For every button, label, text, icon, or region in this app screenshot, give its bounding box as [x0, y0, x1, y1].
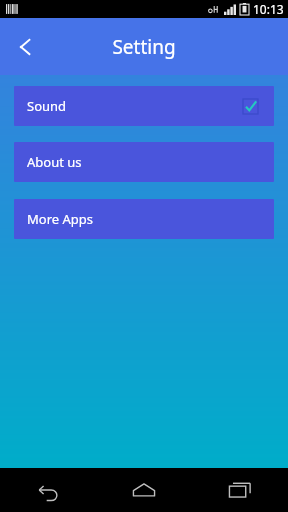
staticText: Setting	[112, 34, 176, 60]
staticText: 10:13	[253, 1, 284, 17]
button[interactable]: About us	[14, 142, 274, 182]
button[interactable]: Recent apps	[192, 468, 288, 512]
staticText: About us	[27, 153, 82, 171]
button[interactable]: Sound	[14, 86, 274, 126]
button[interactable]: Back	[0, 468, 96, 512]
button[interactable]: More Apps	[14, 199, 274, 239]
button[interactable]: Back	[8, 30, 42, 64]
button[interactable]: Home	[96, 468, 192, 512]
staticText: Sound	[27, 97, 67, 115]
staticText: More Apps	[27, 210, 94, 228]
